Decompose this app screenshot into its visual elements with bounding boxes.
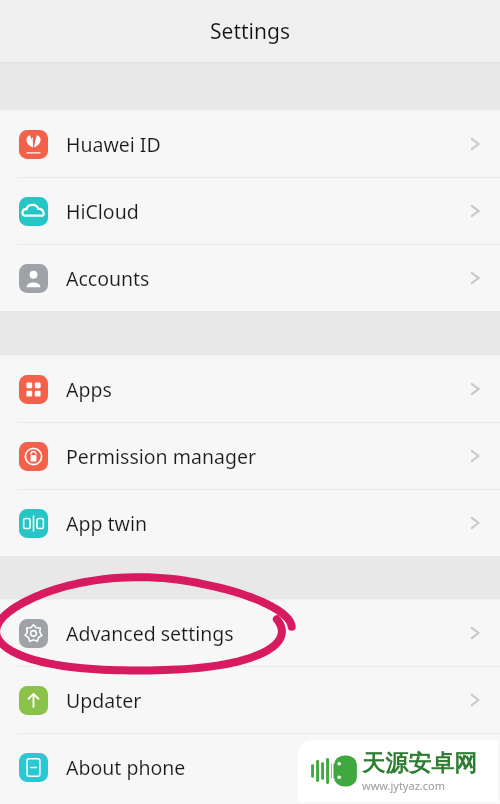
staticText: Advanced settings — [66, 620, 234, 647]
staticText: Updater — [66, 687, 142, 714]
button[interactable]: Huawei ID — [0, 111, 500, 177]
staticText: HiCloud — [66, 198, 139, 225]
staticText: 天源安卓网 — [362, 749, 477, 778]
staticText: App twin — [66, 510, 147, 537]
staticText: Permission manager — [66, 443, 256, 470]
staticText: Settings — [210, 17, 290, 46]
button[interactable]: Advanced settings — [0, 600, 500, 666]
button[interactable]: HiCloud — [0, 178, 500, 244]
staticText: Accounts — [66, 265, 150, 292]
staticText: www.jytyaz.com — [362, 778, 445, 793]
button[interactable]: Updater — [0, 667, 500, 733]
button[interactable]: Apps — [0, 356, 500, 422]
staticText: Huawei ID — [66, 131, 161, 158]
staticText: Apps — [66, 376, 112, 403]
button[interactable]: App twin — [0, 490, 500, 556]
button[interactable]: Accounts — [0, 245, 500, 311]
staticText: About phone — [66, 754, 186, 781]
button[interactable]: Permission manager — [0, 423, 500, 489]
button[interactable]: About phone — [0, 734, 500, 800]
